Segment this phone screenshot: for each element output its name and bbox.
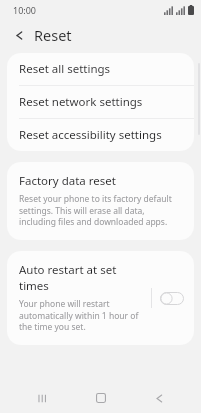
button[interactable]: Auto restart at set times xyxy=(7,251,151,345)
button[interactable]: Reset network settings xyxy=(7,86,194,118)
staticText: Reset xyxy=(34,25,72,45)
button[interactable]: Reset all settings xyxy=(7,53,194,85)
button[interactable]: Recent apps xyxy=(25,383,59,413)
button[interactable]: Reset accessibility settings xyxy=(7,119,194,151)
button[interactable]: Back xyxy=(142,383,176,413)
button[interactable]: Factory data reset xyxy=(7,162,194,240)
staticText: Reset accessibility settings xyxy=(19,127,162,143)
staticText: Reset network settings xyxy=(19,94,143,110)
staticText: Auto restart at set times xyxy=(19,262,145,294)
staticText: Reset your phone to its factory default … xyxy=(19,193,180,228)
staticText: Your phone will restart automatically wi… xyxy=(19,298,145,333)
staticText: Reset all settings xyxy=(19,61,111,77)
button[interactable]: Auto restart toggle xyxy=(159,287,185,309)
button[interactable]: Back xyxy=(8,24,30,46)
staticText: Factory data reset xyxy=(19,173,116,189)
staticText: 10:00 xyxy=(13,4,37,16)
button[interactable]: Home xyxy=(84,383,118,413)
